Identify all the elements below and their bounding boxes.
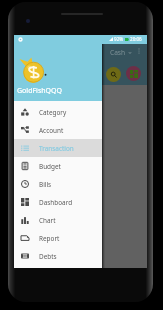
button[interactable]: Budget — [14, 157, 102, 175]
button[interactable]: Category — [14, 103, 102, 121]
staticText: GoldFishQQQ — [17, 86, 62, 96]
button[interactable]: Debts — [14, 247, 102, 265]
staticText: Report — [39, 234, 60, 243]
staticText: Account — [39, 126, 64, 135]
button[interactable]: Add transaction — [126, 66, 141, 81]
staticText: Chart — [39, 216, 56, 225]
button[interactable]: Chart — [14, 211, 102, 229]
staticText: Dashboard — [39, 198, 73, 207]
button[interactable]: Account — [14, 121, 102, 139]
staticText: Category — [39, 108, 67, 117]
staticText: Transaction — [39, 144, 74, 153]
staticText: Debts — [39, 252, 57, 261]
staticText: 92% — [114, 36, 124, 42]
button[interactable]: Report — [14, 229, 102, 247]
staticText: Bills — [39, 180, 52, 189]
button[interactable]: Transaction — [14, 139, 102, 157]
staticText: Budget — [39, 162, 61, 171]
staticText: 20:06 — [130, 36, 142, 42]
button[interactable]: Bills — [14, 175, 102, 193]
staticText: Cash — [110, 48, 126, 57]
button[interactable]: More options — [133, 45, 145, 57]
button[interactable]: Cash — [110, 48, 132, 57]
button[interactable]: Dashboard — [14, 193, 102, 211]
button[interactable]: Search — [106, 67, 121, 82]
